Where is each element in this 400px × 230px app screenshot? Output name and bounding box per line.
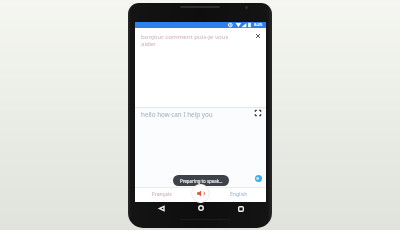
staticText: bonjour comment puis-je vous aider xyxy=(141,32,253,47)
button[interactable]: English xyxy=(211,187,266,201)
staticText: English xyxy=(230,191,248,198)
button[interactable]: Preparing to speak... xyxy=(173,175,229,186)
button[interactable]: Close xyxy=(252,30,264,42)
button[interactable]: Back xyxy=(153,200,169,216)
button[interactable]: Fullscreen xyxy=(252,107,264,119)
staticText: Français xyxy=(152,191,172,198)
staticText: 8:25 xyxy=(254,22,263,28)
button[interactable]: Home xyxy=(193,200,209,216)
button[interactable]: Recent apps xyxy=(233,201,249,217)
button[interactable]: Play audio xyxy=(252,172,264,184)
button[interactable]: Speak xyxy=(191,184,210,203)
staticText: Preparing to speak... xyxy=(180,178,223,184)
button[interactable]: Français xyxy=(135,187,189,201)
staticText: hello how can I help you xyxy=(141,110,213,119)
